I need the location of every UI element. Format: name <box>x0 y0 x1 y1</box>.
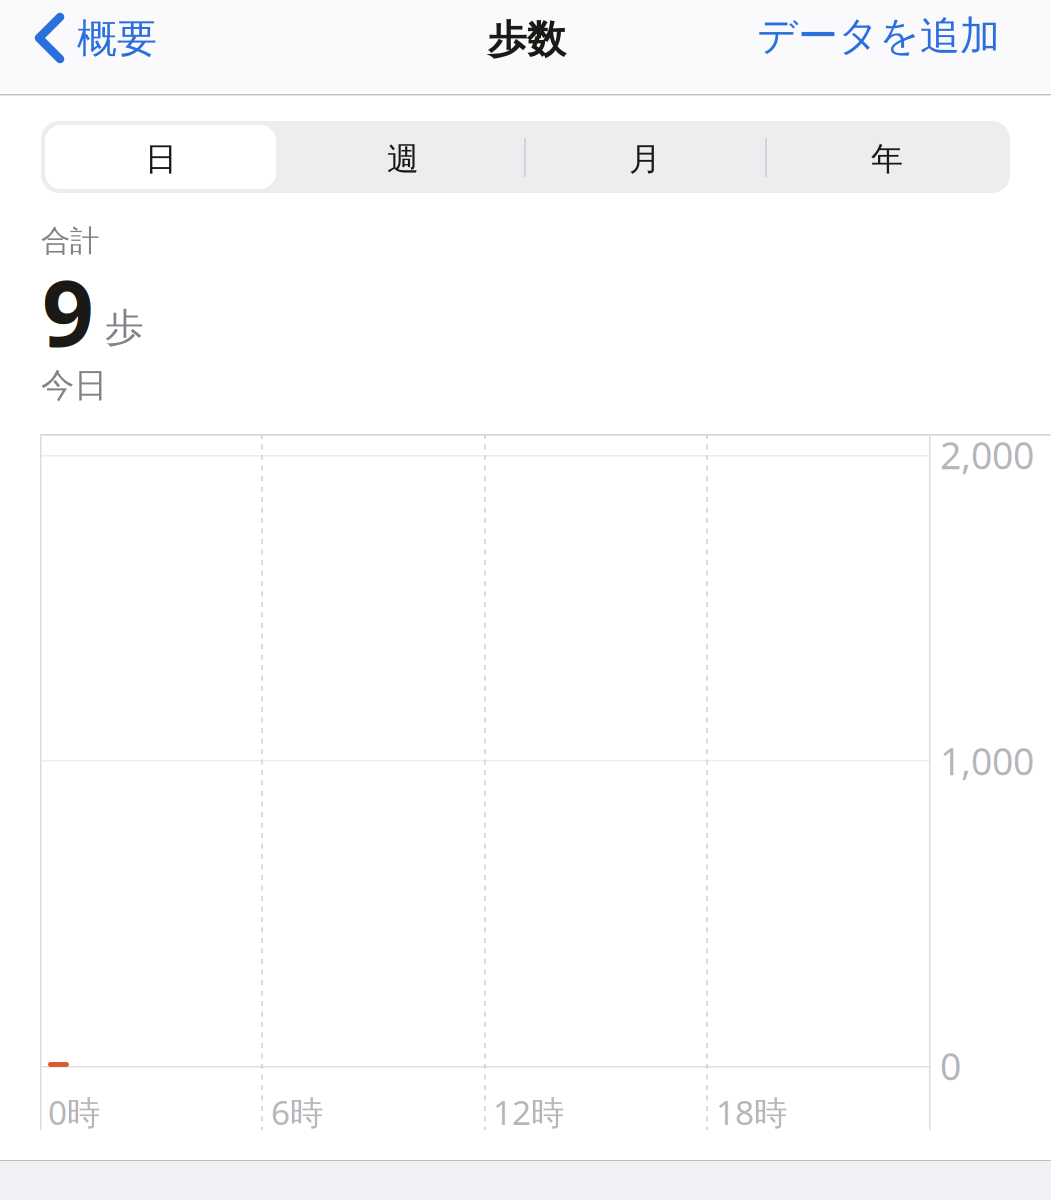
staticText: 今日 <box>41 365 107 406</box>
staticText: 2,000 <box>940 430 1034 480</box>
staticText: 9 <box>42 251 94 371</box>
button[interactable]: 日 <box>40 123 282 195</box>
button[interactable]: 月 <box>524 123 766 195</box>
staticText: 週 <box>387 139 419 179</box>
staticText: 1,000 <box>940 736 1034 786</box>
button[interactable]: データを追加 <box>757 0 1000 76</box>
staticText: 6時 <box>271 1090 323 1134</box>
staticText: データを追加 <box>757 11 1000 60</box>
staticText: 概要 <box>77 14 157 63</box>
staticText: 歩 <box>105 304 144 351</box>
button[interactable]: 年 <box>766 123 1008 195</box>
staticText: 18時 <box>716 1090 787 1134</box>
staticText: 日 <box>145 139 177 179</box>
staticText: 歩数 <box>488 16 566 63</box>
button[interactable]: 週 <box>282 123 524 195</box>
staticText: 年 <box>871 139 903 179</box>
staticText: 12時 <box>493 1090 564 1134</box>
staticText: 月 <box>629 139 661 179</box>
button[interactable]: 戻る 概要 <box>32 5 162 85</box>
staticText: 0 <box>940 1041 961 1091</box>
staticText: 合計 <box>41 223 99 259</box>
staticText: 0時 <box>48 1090 100 1134</box>
